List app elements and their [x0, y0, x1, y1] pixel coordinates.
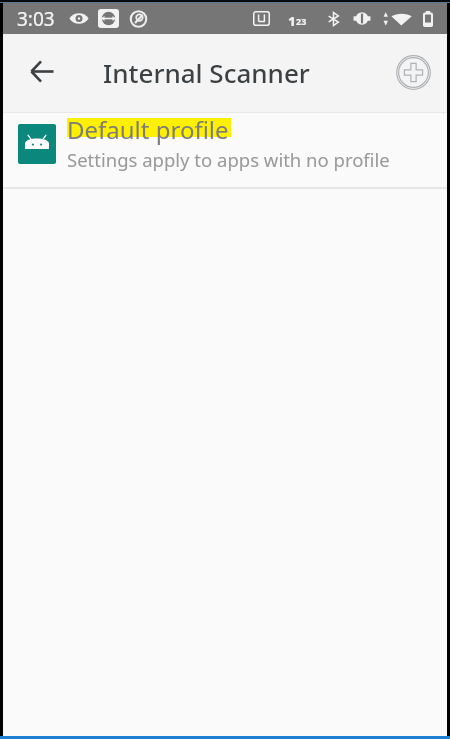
staticText: 23 [296, 15, 307, 27]
staticText: Internal Scanner [103, 55, 310, 90]
staticText: Default profile [67, 113, 229, 146]
button[interactable]: Default profile [3, 113, 447, 187]
button[interactable]: Navigate up [18, 48, 65, 95]
staticText: 3:03 [17, 6, 55, 32]
staticText: Settings apply to apps with no profile [67, 147, 390, 172]
staticText: 1 [288, 12, 297, 26]
button[interactable]: Add profile [390, 49, 436, 95]
